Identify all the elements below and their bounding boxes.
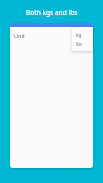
other: Unit options <box>72 27 93 51</box>
staticText: Both kgs and lbs <box>26 8 78 17</box>
button[interactable]: Unit <box>10 27 93 41</box>
button[interactable]: lbs <box>72 39 93 48</box>
staticText: kg <box>76 32 82 38</box>
button[interactable]: kg <box>72 30 93 39</box>
staticText: lbs <box>76 41 83 47</box>
staticText: Unit <box>14 32 25 39</box>
